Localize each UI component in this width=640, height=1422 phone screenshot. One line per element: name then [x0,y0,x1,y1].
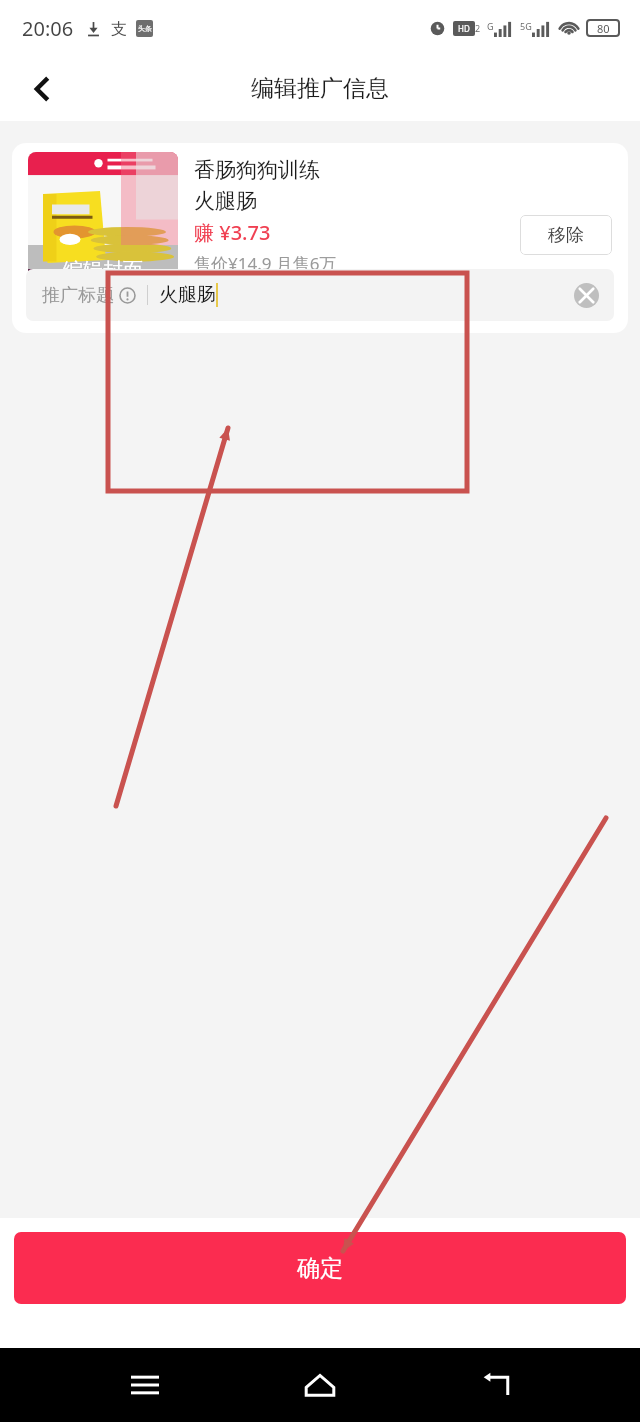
staticText: G [487,20,494,32]
button[interactable]: Recents [114,1354,176,1416]
staticText: 支 [111,19,127,39]
staticText: 2 [475,22,481,34]
staticText: 香肠狗狗训练 火腿肠 [194,157,320,214]
staticText: 头条 [138,24,152,33]
staticText: 赚 ¥3.73 [194,219,271,246]
button[interactable]: Edit cover [28,152,178,302]
staticText: HD [458,23,470,34]
button[interactable]: Home [289,1354,351,1416]
staticText: 编辑封面 [28,258,178,283]
staticText: 推广标题 [42,284,114,307]
button[interactable]: 移除 [520,215,612,255]
staticText: 5G [520,20,532,32]
staticText: 售价¥14.9 月售6万 [194,252,337,275]
staticText: 20:06 [22,15,74,42]
button[interactable]: 确定 [14,1232,626,1304]
staticText: 火腿肠 [159,283,216,307]
button[interactable]: Clear [566,275,606,315]
staticText: 确定 [297,1254,343,1283]
staticText: 编辑推广信息 [251,74,389,103]
staticText: 移除 [548,224,584,247]
staticText: 80 [597,21,610,36]
button[interactable]: Back [465,1354,527,1416]
button[interactable]: Back [14,61,70,117]
button[interactable]: 推广标题 [26,269,614,321]
